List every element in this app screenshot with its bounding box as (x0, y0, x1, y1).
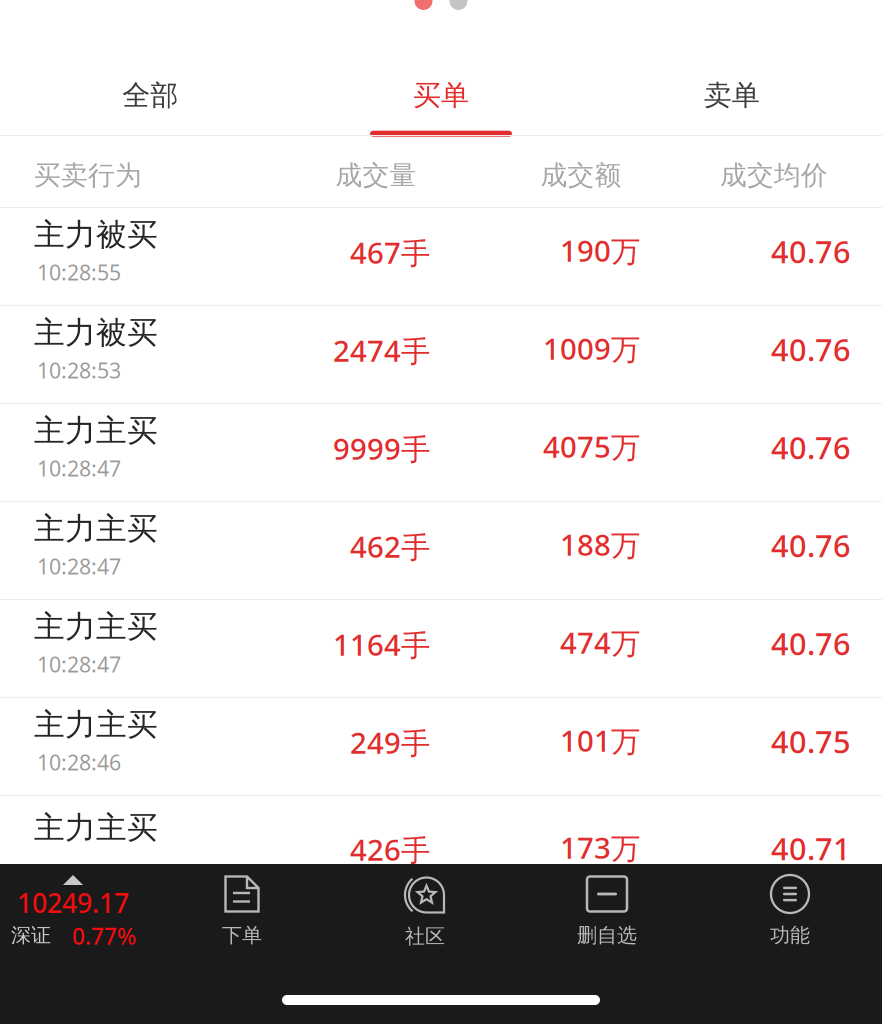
staticText: 40.71 (771, 828, 851, 869)
staticText: 2474手 (333, 331, 430, 370)
button[interactable]: 主力主买 (0, 698, 882, 795)
staticText: 10:28:47 (37, 454, 121, 482)
staticText: 主力被买 (34, 314, 158, 352)
staticText: 下单 (222, 923, 262, 948)
button[interactable]: 买单 (296, 10, 586, 135)
staticText: 40.76 (771, 525, 851, 566)
button[interactable]: 删自选 (516, 864, 698, 960)
staticText: 主力主买 (34, 608, 158, 646)
staticText: 主力主买 (34, 412, 158, 450)
staticText: 功能 (770, 923, 810, 948)
staticText: 成交额 (540, 159, 621, 192)
button[interactable]: 全部 (5, 10, 296, 135)
staticText: 40.76 (771, 329, 851, 370)
staticText: 40.76 (771, 623, 851, 664)
staticText: 深证 (11, 923, 51, 948)
staticText: 467手 (350, 233, 430, 272)
button[interactable]: 主力主买 (0, 502, 882, 599)
button[interactable]: 深证 10249.17 上涨 0.77% (0, 864, 150, 960)
staticText: 101万 (560, 721, 640, 760)
button[interactable]: 下单 (150, 864, 334, 960)
button[interactable]: 功能 (698, 864, 882, 960)
staticText: 社区 (405, 924, 445, 949)
staticText: 成交均价 (720, 159, 828, 192)
button[interactable]: 主力主买 (0, 404, 882, 501)
staticText: 0.77% (72, 921, 136, 951)
staticText: 190万 (560, 231, 640, 270)
staticText: 426手 (350, 830, 430, 869)
button[interactable]: 卖单 (586, 10, 877, 135)
staticText: 10:28:47 (37, 869, 121, 897)
staticText: 40.76 (771, 231, 851, 272)
staticText: 主力被买 (34, 216, 158, 254)
staticText: 买单 (413, 78, 469, 113)
staticText: 173万 (560, 828, 640, 867)
button[interactable]: 主力被买 (0, 208, 882, 305)
staticText: 10:28:47 (37, 552, 121, 580)
staticText: 主力主买 (34, 510, 158, 548)
button[interactable]: 主力主买 (0, 600, 882, 697)
staticText: 40.76 (771, 427, 851, 468)
staticText: 40.75 (771, 721, 851, 762)
staticText: 188万 (560, 525, 640, 564)
staticText: 卖单 (704, 78, 760, 113)
staticText: 10:28:47 (37, 650, 121, 678)
staticText: 主力主买 (34, 706, 158, 744)
staticText: 1009万 (543, 329, 640, 368)
button[interactable]: 社区 (334, 864, 516, 960)
staticText: 1164手 (333, 625, 430, 664)
staticText: 10249.17 (17, 885, 129, 920)
staticText: 474万 (560, 623, 640, 662)
staticText: 10:28:53 (37, 356, 121, 384)
staticText: 主力主买 (34, 809, 158, 847)
staticText: 4075万 (543, 427, 640, 466)
button[interactable]: 主力主买 (0, 796, 882, 893)
staticText: 10:28:55 (37, 258, 121, 286)
staticText: 9999手 (333, 429, 430, 468)
staticText: 249手 (350, 723, 430, 762)
staticText: 删自选 (577, 923, 637, 948)
staticText: 10:28:46 (37, 748, 121, 776)
staticText: 成交量 (335, 159, 416, 192)
button[interactable]: 主力被买 (0, 306, 882, 403)
staticText: 462手 (350, 527, 430, 566)
staticText: 全部 (122, 78, 178, 113)
staticText: 买卖行为 (34, 159, 142, 192)
